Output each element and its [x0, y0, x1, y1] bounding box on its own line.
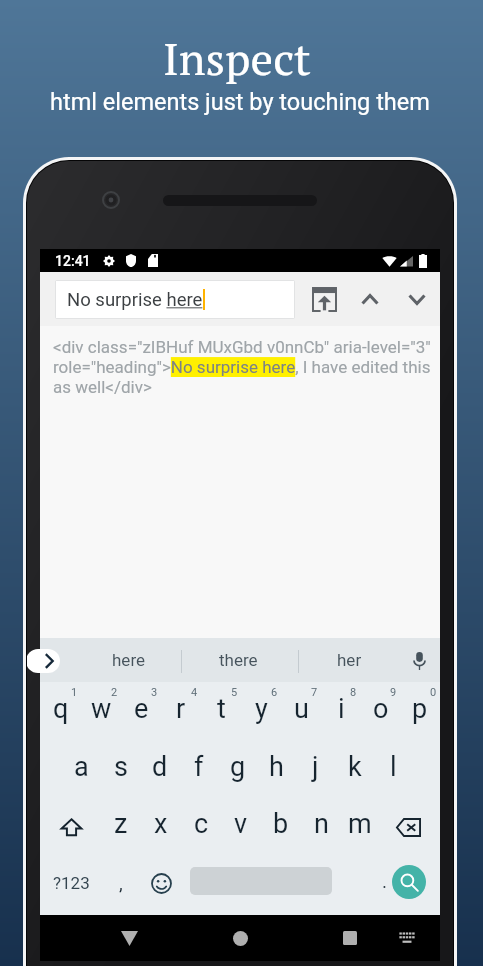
staticText: a [74, 751, 89, 783]
button[interactable]: l [374, 750, 413, 784]
button[interactable]: v [221, 807, 261, 841]
staticText: <div class="zIBHuf MUxGbd v0nnCb" aria-l… [53, 337, 431, 357]
button[interactable]: . [370, 866, 400, 896]
button[interactable]: ?123 [46, 866, 97, 900]
staticText: l [390, 751, 397, 783]
staticText: n [314, 808, 329, 840]
button[interactable]: Voice input [402, 643, 437, 678]
staticText: role="heading">No surprise here, I have … [53, 357, 431, 377]
staticText: r [176, 693, 186, 725]
staticText: c [194, 808, 209, 840]
staticText: there [219, 650, 258, 670]
staticText: j [312, 751, 319, 783]
button[interactable]: z [101, 807, 141, 841]
button[interactable]: her [309, 638, 389, 682]
button[interactable]: Shift [56, 812, 87, 843]
staticText: h [269, 751, 284, 783]
button[interactable]: p [400, 692, 440, 726]
staticText: ?123 [53, 873, 90, 893]
button[interactable]: e [121, 692, 161, 726]
button[interactable]: t [201, 692, 241, 726]
staticText: No surprise here [67, 289, 203, 311]
button[interactable]: Search [392, 865, 426, 899]
button[interactable]: b [261, 807, 301, 841]
staticText: k [348, 751, 362, 783]
button[interactable]: j [296, 750, 335, 784]
button[interactable]: g [218, 750, 257, 784]
staticText: as well</div> [53, 377, 152, 397]
button[interactable]: y [241, 692, 281, 726]
staticText: 0 [430, 686, 437, 699]
staticText: b [273, 808, 289, 840]
staticText: f [194, 751, 204, 783]
staticText: u [294, 693, 309, 725]
staticText: here [112, 650, 145, 670]
button[interactable]: No surprise here [56, 281, 294, 318]
staticText: v [234, 808, 248, 840]
staticText: 4 [191, 686, 198, 699]
staticText: t [217, 693, 226, 725]
staticText: w [91, 693, 112, 725]
button[interactable]: i [321, 692, 361, 726]
button[interactable]: Switch keyboard [387, 918, 427, 958]
button[interactable]: Back [109, 918, 149, 958]
staticText: z [114, 808, 128, 840]
staticText: o [373, 693, 389, 725]
button[interactable]: c [181, 807, 221, 841]
button[interactable]: n [301, 807, 341, 841]
staticText: y [255, 693, 268, 725]
staticText: m [348, 808, 372, 840]
button[interactable]: Expand suggestions [27, 649, 60, 673]
staticText: 12:41 [55, 253, 91, 269]
button[interactable]: f [179, 750, 218, 784]
button[interactable]: Previous result [352, 281, 388, 317]
button[interactable]: Backspace [393, 812, 424, 843]
button[interactable]: w [81, 692, 121, 726]
staticText: Inspect [163, 28, 311, 88]
staticText: i [338, 693, 345, 725]
button[interactable]: there [198, 638, 278, 682]
staticText: g [230, 751, 246, 783]
button[interactable]: Next result [399, 281, 435, 317]
button[interactable]: Home [220, 918, 260, 958]
staticText: 5 [231, 686, 238, 699]
button[interactable]: h [257, 750, 296, 784]
staticText: 1 [71, 686, 78, 699]
button[interactable]: x [141, 807, 181, 841]
staticText: p [412, 693, 428, 725]
staticText: x [154, 808, 168, 840]
staticText: 6 [271, 686, 278, 699]
staticText: e [134, 693, 149, 725]
button[interactable]: u [281, 692, 321, 726]
button[interactable]: here [88, 638, 168, 682]
button[interactable]: m [340, 807, 380, 841]
staticText: her [337, 650, 362, 670]
staticText: 9 [390, 686, 397, 699]
staticText: 2 [111, 686, 118, 699]
button[interactable]: d [140, 750, 179, 784]
staticText: html elements just by touching them [50, 88, 430, 116]
button[interactable]: Recent apps [330, 918, 370, 958]
staticText: 8 [350, 686, 357, 699]
button[interactable]: k [335, 750, 374, 784]
button[interactable]: Emoji [144, 866, 178, 900]
staticText: q [53, 693, 69, 725]
button[interactable]: s [101, 750, 140, 784]
button[interactable]: q [41, 692, 81, 726]
staticText: s [114, 751, 128, 783]
staticText: , [119, 872, 123, 894]
staticText: d [152, 751, 168, 783]
button[interactable]: r [161, 692, 201, 726]
button[interactable]: , [104, 866, 138, 900]
button[interactable]: a [62, 750, 101, 784]
button[interactable]: o [361, 692, 401, 726]
button[interactable]: Open in browser [306, 281, 342, 317]
staticText: 7 [311, 686, 318, 699]
staticText: . [382, 870, 388, 892]
staticText: 3 [151, 686, 158, 699]
